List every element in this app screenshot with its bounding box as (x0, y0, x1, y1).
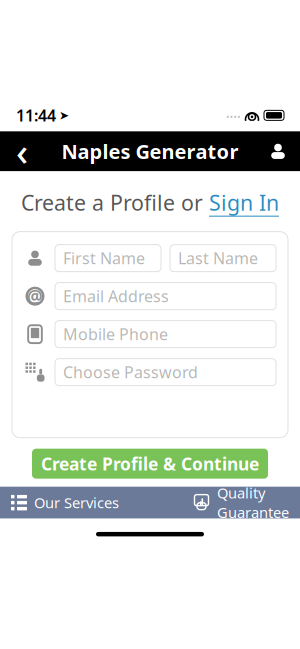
staticText: Last Name (178, 247, 258, 269)
staticText: Our Services (34, 493, 119, 512)
staticText: Mobile Phone (63, 323, 168, 345)
button[interactable]: Our Services (0, 487, 150, 519)
staticText: Email Address (63, 285, 169, 307)
staticText: @ (27, 285, 43, 308)
staticText: Naples Generator (61, 138, 238, 165)
staticText: Quality Guarantee (217, 483, 289, 522)
staticText: ‹ (16, 126, 28, 176)
button[interactable]: Back (0, 131, 44, 171)
button[interactable]: Account (256, 131, 300, 171)
staticText: Create a Profile or (21, 188, 209, 217)
staticText: First Name (63, 247, 145, 269)
button[interactable]: Quality Guarantee (150, 487, 300, 519)
staticText: Create Profile & Continue (41, 452, 259, 475)
staticText: Choose Password (63, 361, 198, 383)
staticText: Sign In (209, 188, 279, 217)
staticText: 11:44 (16, 105, 56, 126)
button[interactable]: Sign In (209, 188, 279, 217)
staticText: ➤ (59, 108, 69, 122)
button[interactable]: Create Profile & Continue (32, 449, 268, 479)
